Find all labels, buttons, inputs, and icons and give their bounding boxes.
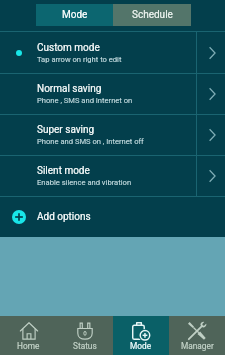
staticText: Mode — [130, 341, 152, 351]
button[interactable]: Add options — [0, 197, 225, 237]
button[interactable]: Mode — [36, 4, 113, 26]
other: Edit Normal saving — [197, 74, 225, 114]
staticText: Status — [73, 341, 97, 351]
staticText: Super saving — [37, 124, 95, 136]
staticText: Schedule — [132, 9, 173, 21]
other: Edit Super saving — [197, 115, 225, 155]
staticText: Custom mode — [37, 42, 100, 54]
other: Edit Custom mode — [197, 32, 225, 73]
staticText: Home — [17, 341, 40, 351]
button[interactable]: Mode — [113, 316, 169, 355]
staticText: Enable silence and vibration — [37, 178, 132, 187]
staticText: Tap arrow on right to edit — [37, 55, 122, 64]
staticText: Phone , SMS and Internet on — [37, 96, 133, 105]
button[interactable]: Super saving — [0, 115, 225, 155]
button[interactable]: Manager — [169, 316, 225, 355]
staticText: Silent mode — [37, 165, 90, 177]
staticText: Normal saving — [37, 83, 102, 95]
staticText: Mode — [62, 9, 88, 21]
button[interactable]: Normal saving — [0, 74, 225, 114]
other: Edit Silent mode — [197, 156, 225, 196]
staticText: Phone and SMS on , Internet off — [37, 137, 144, 146]
button[interactable]: Status — [57, 316, 113, 355]
staticText: Add options — [37, 211, 91, 223]
button[interactable]: Schedule — [113, 4, 191, 26]
staticText: Manager — [181, 341, 214, 351]
button[interactable]: Custom mode — [0, 32, 225, 73]
button[interactable]: Home — [0, 316, 57, 355]
button[interactable]: Silent mode — [0, 156, 225, 196]
